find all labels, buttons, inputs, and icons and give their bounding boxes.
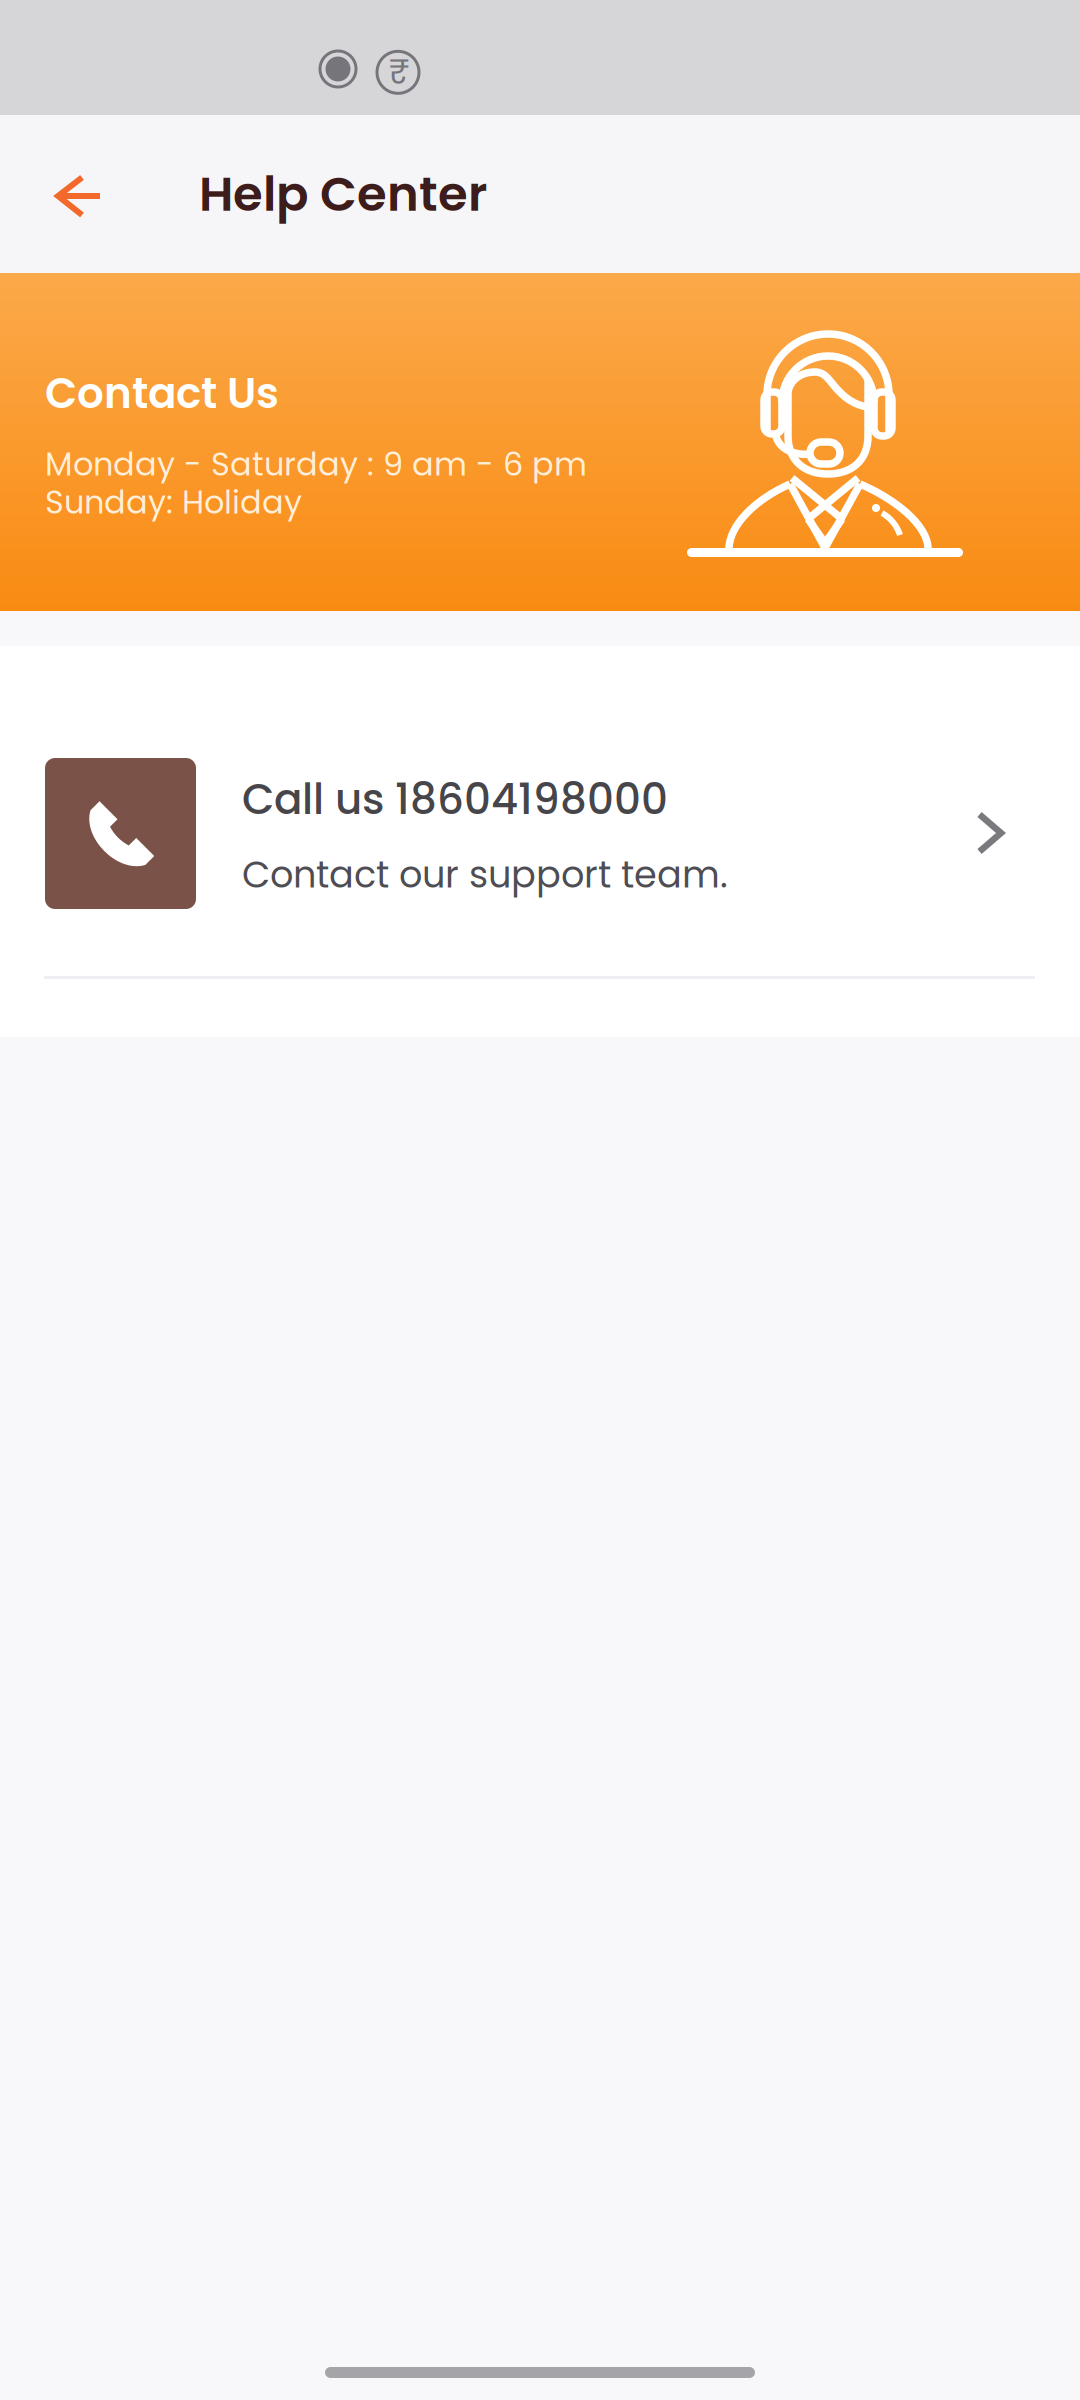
staticText: Contact our support team.	[242, 849, 728, 900]
button[interactable]: Call us 18604198000	[0, 646, 1080, 1037]
staticText: ₹	[388, 48, 409, 95]
staticText: Call us 18604198000	[242, 770, 668, 829]
staticText: Monday - Saturday : 9 am - 6 pm	[45, 442, 587, 487]
staticText: Sunday: Holiday	[45, 480, 302, 525]
staticText: Help Center	[199, 160, 487, 228]
staticText: Contact Us	[45, 364, 279, 423]
button[interactable]: Back	[0, 115, 199, 273]
